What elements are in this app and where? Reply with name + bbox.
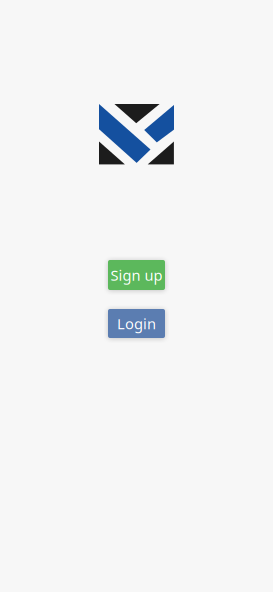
staticText: Sign up (110, 265, 162, 285)
staticText: Login (117, 314, 156, 333)
button[interactable]: Sign up (108, 260, 165, 290)
button[interactable]: Login (108, 309, 165, 338)
